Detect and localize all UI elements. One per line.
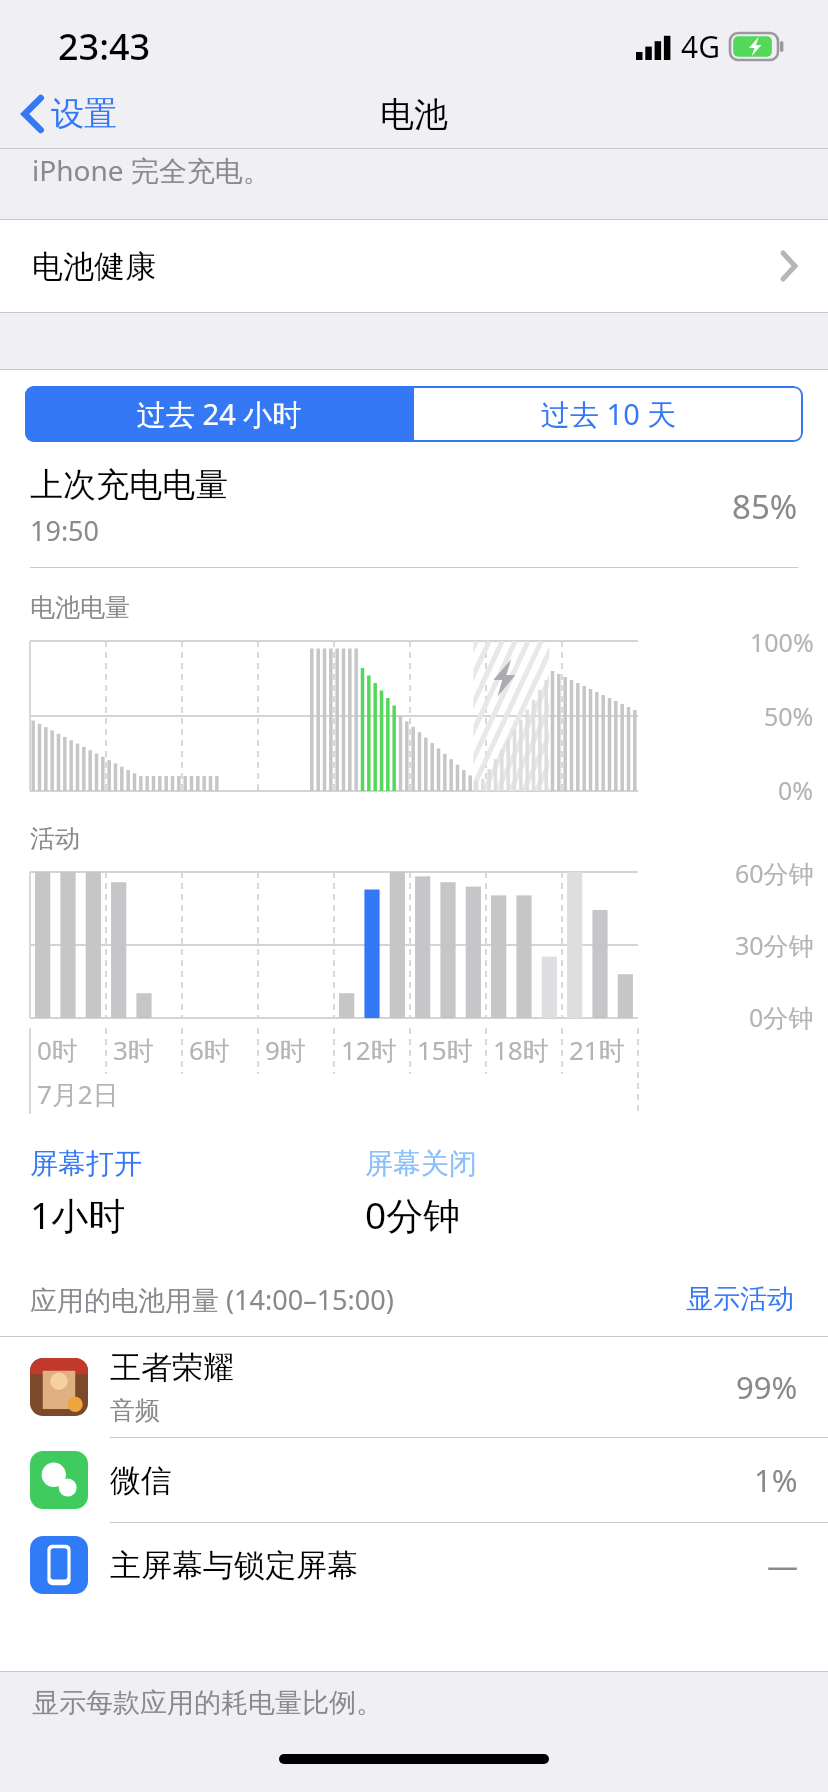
staticText: 显示每款应用的耗电量比例。 <box>32 1686 383 1720</box>
staticText: 18时 <box>493 1032 549 1068</box>
staticText: 0分钟 <box>365 1189 461 1240</box>
staticText: 30分钟 <box>735 928 814 962</box>
staticText: 99% <box>736 1366 798 1408</box>
button[interactable]: 电池健康 <box>0 220 828 312</box>
staticText: 100% <box>750 625 814 659</box>
button[interactable]: 主屏幕与锁定屏幕 <box>0 1523 828 1607</box>
staticText: 9时 <box>265 1032 306 1068</box>
staticText: 音频 <box>110 1395 160 1426</box>
staticText: 3时 <box>113 1032 154 1068</box>
staticText: 60分钟 <box>735 856 814 890</box>
staticText: 1% <box>754 1459 798 1501</box>
button[interactable]: 王者荣耀 <box>0 1337 828 1437</box>
staticText: 设置 <box>51 93 117 135</box>
staticText: 过去 24 小时 <box>137 394 302 434</box>
staticText: 12时 <box>341 1032 397 1068</box>
staticText: 15时 <box>417 1032 473 1068</box>
button[interactable]: 过去 10 天 <box>414 386 803 442</box>
staticText: 0% <box>778 773 814 807</box>
staticText: 0时 <box>37 1032 78 1068</box>
staticText: 23:43 <box>58 22 151 71</box>
staticText: 电池电量 <box>30 592 130 623</box>
staticText: 应用的电池用量 (14:00–15:00) <box>30 1281 394 1318</box>
staticText: 7月2日 <box>37 1076 119 1112</box>
staticText: 活动 <box>30 823 80 854</box>
staticText: 50% <box>764 699 814 733</box>
staticText: 屏幕关闭 <box>365 1146 477 1181</box>
staticText: 4G <box>681 26 720 67</box>
staticText: 1小时 <box>30 1189 126 1240</box>
button[interactable]: 设置 <box>0 80 135 148</box>
button[interactable]: 微信 <box>0 1438 828 1522</box>
staticText: 王者荣耀 <box>110 1348 234 1387</box>
staticText: 6时 <box>189 1032 230 1068</box>
staticText: 21时 <box>569 1032 625 1068</box>
staticText: 85% <box>732 484 798 529</box>
staticText: 微信 <box>110 1461 172 1500</box>
staticText: — <box>767 1544 798 1586</box>
staticText: 19:50 <box>30 512 100 549</box>
staticText: iPhone 完全充电。 <box>32 151 271 189</box>
staticText: 电池健康 <box>32 247 156 286</box>
button[interactable]: 过去 24 小时 <box>25 386 414 442</box>
staticText: 电池 <box>380 93 448 136</box>
button[interactable]: 显示活动 <box>682 1278 798 1320</box>
staticText: 过去 10 天 <box>541 394 677 434</box>
staticText: 主屏幕与锁定屏幕 <box>110 1546 358 1585</box>
staticText: 0分钟 <box>749 1000 814 1034</box>
staticText: 上次充电电量 <box>30 464 228 506</box>
staticText: 屏幕打开 <box>30 1146 142 1181</box>
staticText: 显示活动 <box>686 1282 794 1316</box>
